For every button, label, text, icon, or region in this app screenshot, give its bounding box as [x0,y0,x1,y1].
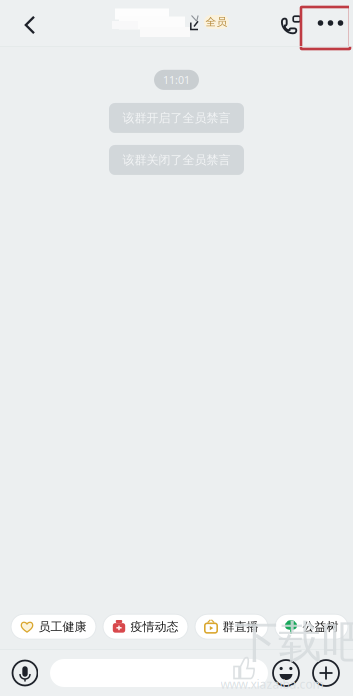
button[interactable]: More [300,0,349,46]
button[interactable]: 群直播 [195,614,268,639]
staticText: 疫情动态 [130,619,178,634]
staticText: 下载吧 [234,615,353,669]
staticText: 11:01 [163,73,190,87]
staticText: 该群关闭了全员禁言 [122,153,230,167]
button[interactable]: Emoji [272,650,300,696]
staticText: 该群开启了全员禁言 [122,111,230,125]
button[interactable]: Voice message [3,650,38,696]
button[interactable]: More options [312,650,340,696]
staticText: 群直播 [222,619,258,634]
button[interactable]: 疫情动态 [103,614,188,639]
staticText: www.xiazaiba.com [220,676,323,692]
button[interactable]: 公益树 [275,614,348,639]
staticText: 全员 [205,15,227,28]
button[interactable]: Back [0,0,46,46]
staticText: 员工健康 [38,619,86,634]
button[interactable]: Call [264,0,300,46]
button[interactable]: 员工健康 [11,614,96,639]
staticText: 公益树 [302,619,338,634]
